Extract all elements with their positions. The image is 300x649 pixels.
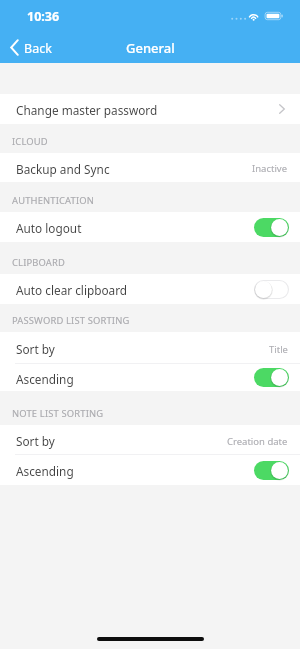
staticText: 10:36 <box>27 8 60 25</box>
staticText: ICLOUD <box>12 135 48 148</box>
staticText: Title <box>269 343 288 356</box>
button[interactable]: Auto clear clipboard <box>0 274 300 304</box>
staticText: Auto clear clipboard <box>16 282 128 298</box>
button[interactable]: Ascending <box>0 455 300 485</box>
staticText: NOTE LIST SORTING <box>12 407 104 420</box>
staticText: Sort by <box>16 341 55 357</box>
staticText: Creation date <box>227 435 288 448</box>
staticText: Backup and Sync <box>16 161 110 177</box>
staticText: Ascending <box>16 463 74 479</box>
button[interactable]: Change master password <box>0 94 300 124</box>
staticText: Sort by <box>16 433 55 449</box>
staticText: Back <box>24 40 52 57</box>
staticText: Inactive <box>252 162 288 175</box>
button[interactable]: Ascending <box>0 364 300 391</box>
button[interactable]: Toggle off <box>254 280 289 299</box>
staticText: PASSWORD LIST SORTING <box>12 314 130 327</box>
button[interactable]: Sort by <box>0 332 300 364</box>
staticText: Ascending <box>16 371 74 387</box>
staticText: General <box>126 39 175 57</box>
button[interactable]: Auto logout <box>0 212 300 242</box>
button[interactable]: Toggle on <box>254 368 289 387</box>
staticText: Change master password <box>16 102 158 118</box>
button[interactable]: Back <box>10 31 52 64</box>
button[interactable]: Sort by <box>0 425 300 455</box>
staticText: Auto logout <box>16 220 82 236</box>
button[interactable]: Toggle on <box>254 461 289 480</box>
button[interactable]: Backup and Sync <box>0 153 300 182</box>
button[interactable]: Toggle on <box>254 218 289 237</box>
staticText: CLIPBOARD <box>12 256 66 269</box>
staticText: AUTHENTICATION <box>12 194 95 207</box>
